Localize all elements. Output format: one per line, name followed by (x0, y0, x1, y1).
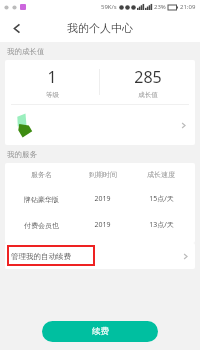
staticText: 285 (134, 66, 162, 88)
button[interactable]: Back (6, 17, 28, 39)
button[interactable]: 285 (100, 66, 195, 99)
button[interactable]: 1 (5, 66, 99, 99)
staticText: 13点/天 (149, 220, 174, 230)
staticText: 2019 (94, 220, 111, 230)
other: More (180, 122, 187, 129)
staticText: 23% (154, 3, 166, 11)
staticText: 我的服务 (7, 150, 37, 159)
staticText: 付费会员也 (24, 221, 59, 230)
staticText: 续费 (92, 326, 109, 337)
staticText: 到期时间 (89, 170, 117, 179)
button[interactable]: 付费会员也 (5, 220, 195, 230)
staticText: 等级 (46, 91, 59, 99)
staticText: 牌钻豪华版 (24, 195, 59, 204)
staticText: 管理我的自动续费 (11, 252, 71, 261)
staticText: 15点/天 (149, 194, 174, 204)
staticText: 成长值 (138, 91, 158, 99)
staticText: 成长速度 (147, 170, 175, 179)
staticText: 59K/s (101, 3, 117, 11)
button[interactable]: More (5, 105, 195, 145)
button[interactable]: 牌钻豪华版 (5, 194, 195, 204)
button[interactable]: 续费 (42, 321, 158, 342)
staticText: 服务名 (31, 170, 52, 179)
staticText: 我的个人中心 (67, 21, 133, 35)
staticText: 21:09 (180, 3, 196, 11)
staticText: 2019 (94, 194, 111, 204)
button[interactable]: 管理我的自动续费 (5, 243, 195, 269)
staticText: 我的成长值 (7, 47, 45, 56)
other: More (182, 253, 189, 260)
staticText: 1 (47, 66, 57, 88)
